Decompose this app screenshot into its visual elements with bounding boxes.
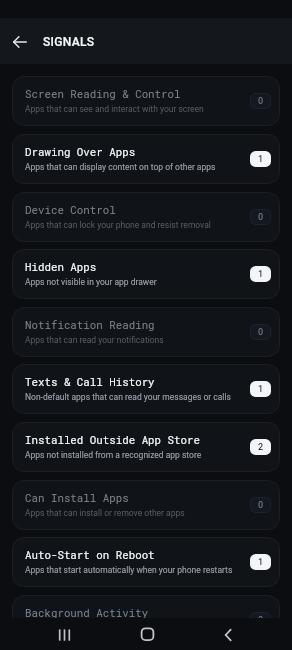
staticText: Notification Reading	[25, 318, 155, 332]
button[interactable]: Can Install Apps	[12, 480, 280, 530]
staticText: Installed Outside App Store	[25, 433, 200, 447]
staticText: Device Control	[25, 203, 116, 217]
button[interactable]: Hidden Apps	[12, 249, 280, 299]
staticText: Background Activity	[25, 606, 149, 618]
staticText: Apps not visible in your app drawer	[25, 277, 157, 287]
staticText: Apps not installed from a recognized app…	[25, 450, 202, 460]
button[interactable]: Back	[6, 28, 34, 56]
staticText: Non-default apps that can read your mess…	[25, 392, 231, 402]
staticText: Apps that can read your notifications	[25, 335, 164, 345]
button[interactable]: Notification Reading	[12, 307, 280, 357]
staticText: Apps that start automatically when your …	[25, 565, 233, 575]
button[interactable]: Recent apps	[48, 618, 81, 650]
staticText: Apps that can see and interact with your…	[25, 104, 204, 114]
staticText: 1	[258, 269, 264, 280]
staticText: Apps that can display content on top of …	[25, 162, 216, 172]
staticText: Apps that can install or remove other ap…	[25, 508, 185, 518]
button[interactable]: Device Control	[12, 192, 280, 242]
staticText: 1	[258, 154, 264, 165]
staticText: SIGNALS	[43, 35, 95, 49]
staticText: Can Install Apps	[25, 491, 129, 505]
staticText: Texts & Call History	[25, 375, 155, 389]
staticText: Screen Reading & Control	[25, 87, 181, 101]
staticText: Auto-Start on Reboot	[25, 548, 155, 562]
staticText: 2	[258, 442, 264, 453]
button[interactable]: Auto-Start on Reboot	[12, 537, 280, 587]
staticText: 1	[258, 557, 264, 568]
staticText: 0	[258, 96, 264, 107]
staticText: 0	[258, 500, 264, 511]
button[interactable]: Drawing Over Apps	[12, 134, 280, 184]
button[interactable]: Background Activity	[12, 595, 280, 618]
button[interactable]: Back	[211, 618, 244, 650]
button[interactable]: Home	[131, 618, 164, 650]
button[interactable]: Screen Reading & Control	[12, 76, 280, 126]
staticText: Drawing Over Apps	[25, 145, 136, 159]
button[interactable]: Texts & Call History	[12, 364, 280, 414]
staticText: 0	[258, 212, 264, 223]
button[interactable]: Installed Outside App Store	[12, 422, 280, 472]
staticText: 1	[258, 384, 264, 395]
staticText: Hidden Apps	[25, 260, 97, 274]
staticText: 0	[258, 615, 264, 618]
staticText: 0	[258, 327, 264, 338]
staticText: Apps that can lock your phone and resist…	[25, 220, 211, 230]
